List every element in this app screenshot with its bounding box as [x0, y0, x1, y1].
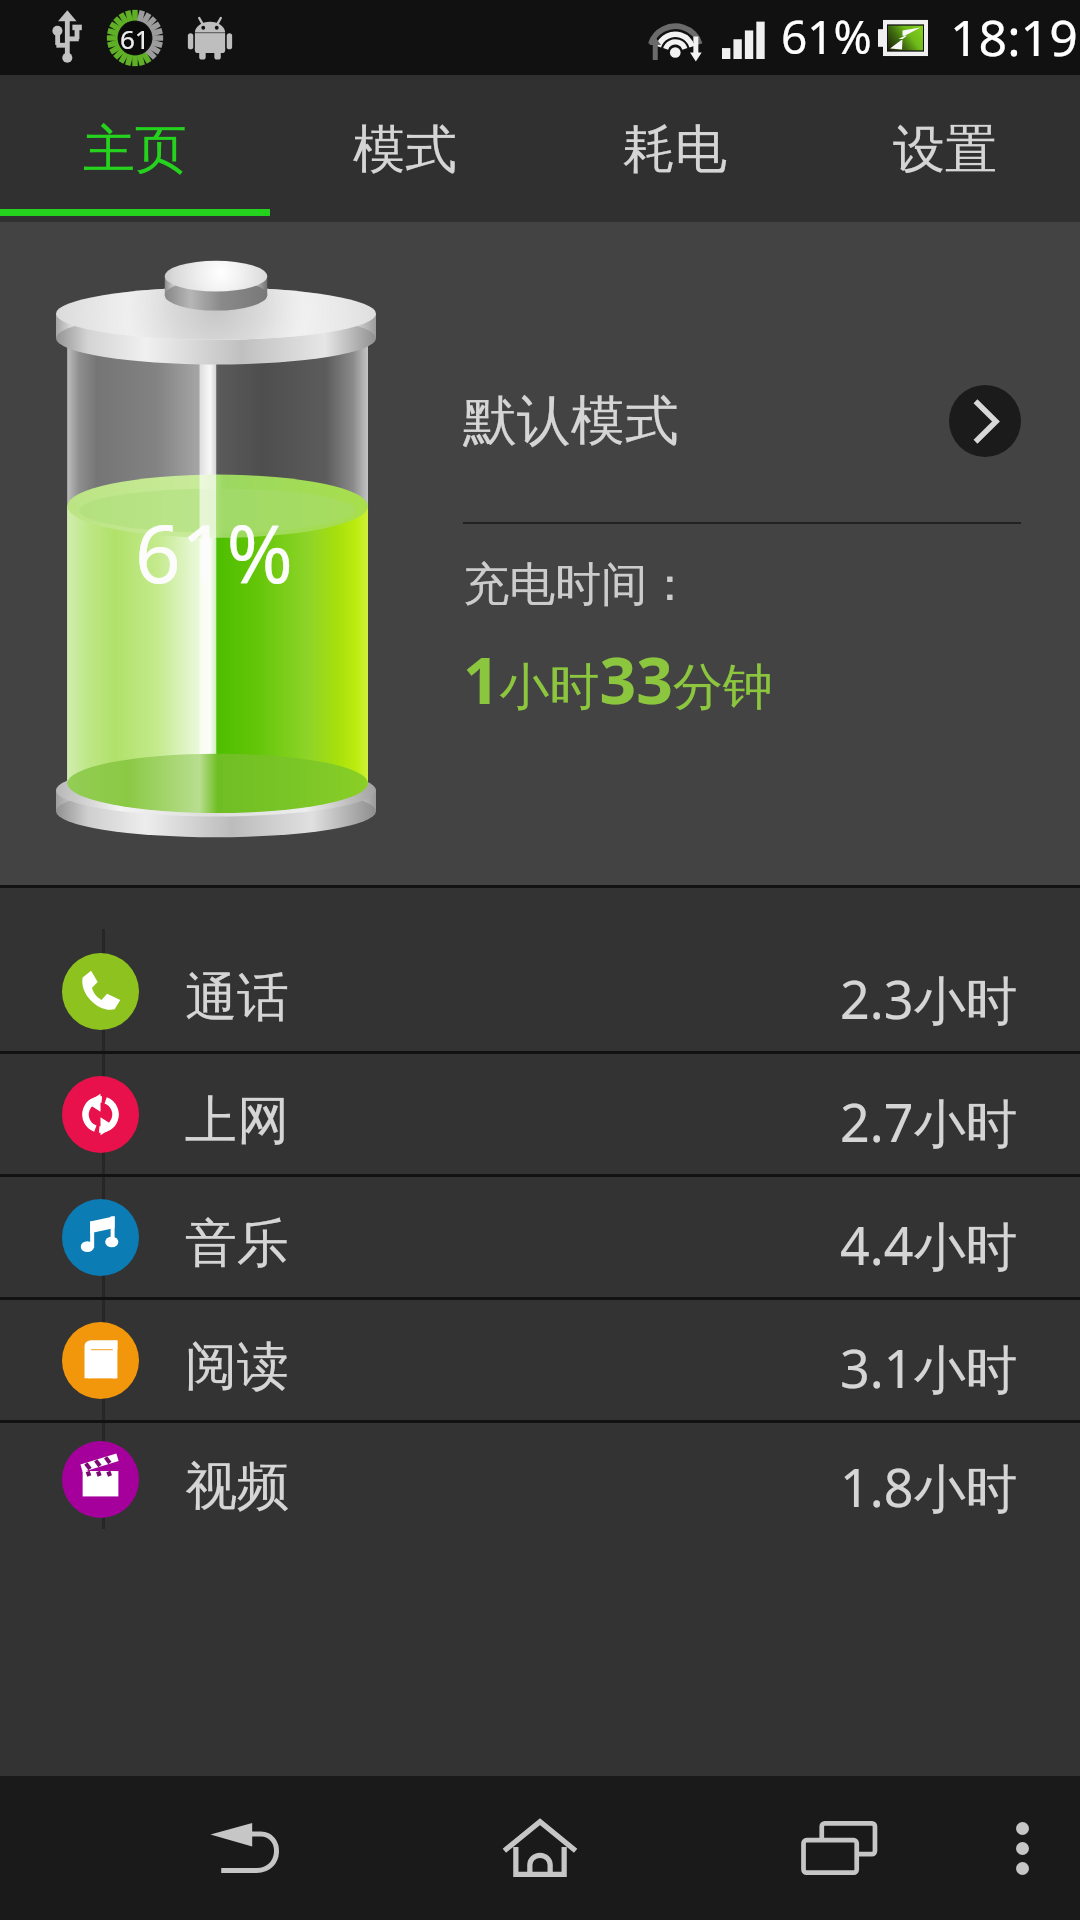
- button[interactable]: More options: [965, 1776, 1080, 1920]
- staticText: 充电时间：: [463, 556, 693, 614]
- button[interactable]: 阅读: [0, 1300, 1080, 1420]
- button[interactable]: 上网: [0, 1054, 1080, 1174]
- staticText: 2.7小时: [840, 1086, 1018, 1157]
- staticText: 音乐: [185, 1211, 289, 1277]
- staticText: 1小时33分钟: [463, 636, 773, 723]
- staticText: 61: [120, 21, 150, 56]
- button[interactable]: Home: [390, 1776, 690, 1920]
- staticText: 4.4小时: [840, 1209, 1018, 1280]
- staticText: 设置: [893, 117, 997, 183]
- staticText: 18:19: [950, 3, 1078, 71]
- button[interactable]: Back: [95, 1776, 395, 1920]
- button[interactable]: 音乐: [0, 1177, 1080, 1297]
- button[interactable]: 视频: [0, 1423, 1080, 1536]
- staticText: 耗电: [623, 117, 727, 183]
- staticText: 1.8小时: [840, 1451, 1018, 1522]
- button[interactable]: 模式: [270, 75, 540, 209]
- button[interactable]: 通话: [0, 888, 1080, 1051]
- staticText: 3.1小时: [840, 1332, 1018, 1403]
- staticText: 模式: [353, 117, 457, 183]
- staticText: 通话: [185, 965, 289, 1031]
- staticText: 视频: [185, 1454, 289, 1520]
- staticText: 61%: [781, 5, 872, 68]
- staticText: 主页: [83, 117, 187, 183]
- staticText: 默认模式: [463, 387, 679, 455]
- button[interactable]: 耗电: [540, 75, 810, 209]
- staticText: 61%: [135, 497, 293, 606]
- staticText: 2.3小时: [840, 963, 1018, 1034]
- staticText: 阅读: [185, 1334, 289, 1400]
- button[interactable]: 主页: [0, 75, 270, 209]
- button[interactable]: 设置: [810, 75, 1080, 209]
- button[interactable]: Recents: [715, 1776, 965, 1920]
- button[interactable]: More modes: [949, 385, 1021, 457]
- staticText: 上网: [185, 1088, 289, 1154]
